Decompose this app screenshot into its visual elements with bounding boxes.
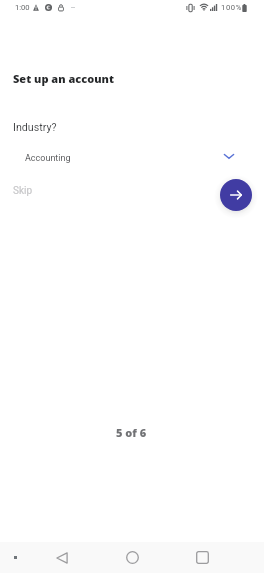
staticText: Accounting [25, 153, 71, 164]
button[interactable]: Back [46, 542, 78, 573]
button[interactable]: Accounting [0, 143, 264, 173]
staticText: 1:00 [15, 3, 30, 12]
staticText: Set up an account [13, 71, 114, 86]
staticText: 5 of 6 [0, 425, 263, 440]
button[interactable]: Skip [13, 185, 33, 197]
button[interactable]: Next [220, 179, 252, 211]
button[interactable]: Recent apps [186, 542, 218, 573]
staticText: Industry? [13, 121, 57, 134]
button[interactable]: Home [116, 542, 148, 573]
staticText: 100% [221, 3, 242, 12]
